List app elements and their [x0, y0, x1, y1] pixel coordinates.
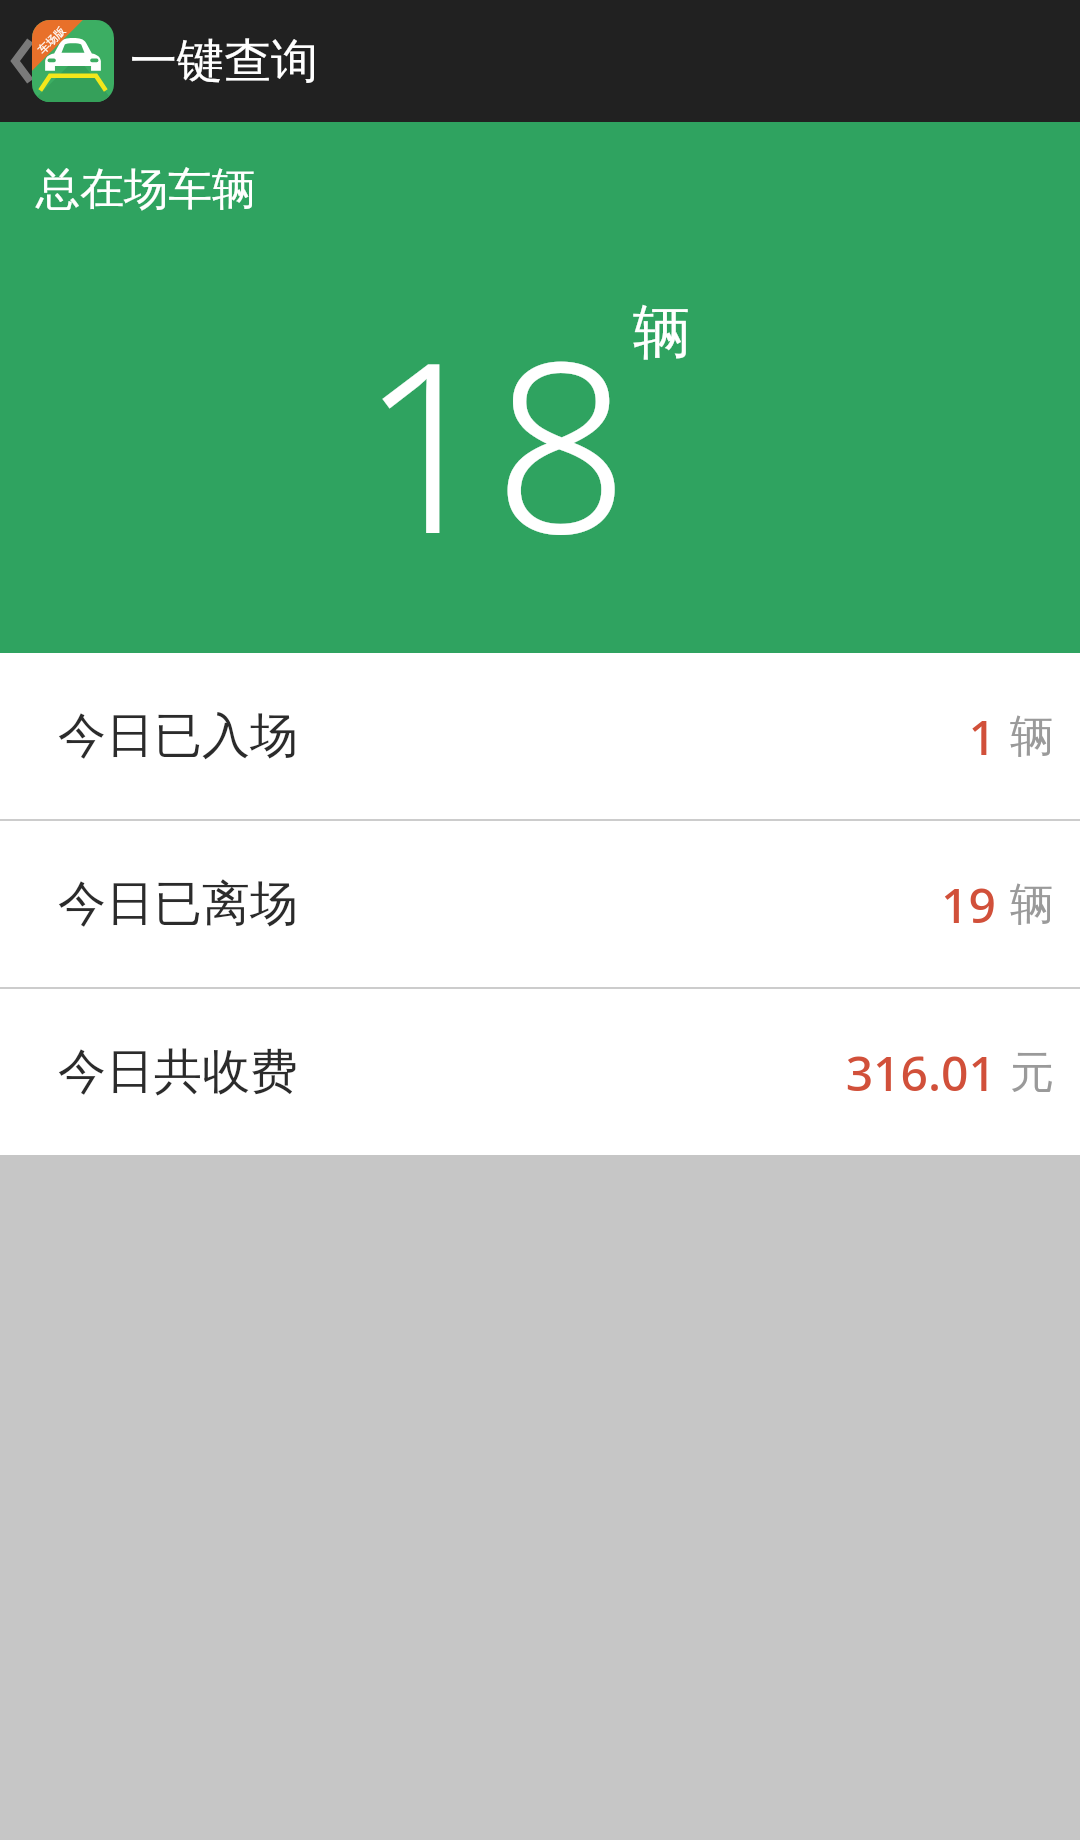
staticText: 车场版	[35, 23, 68, 57]
button[interactable]: Back	[0, 0, 46, 122]
staticText: 辆	[633, 296, 691, 369]
button[interactable]: 今日共收费	[0, 989, 1080, 1155]
staticText: 今日共收费	[58, 1042, 298, 1102]
staticText: 辆	[1010, 877, 1054, 932]
staticText: 今日已入场	[58, 706, 298, 766]
button[interactable]: 今日已离场	[0, 821, 1080, 987]
button[interactable]: 今日已入场	[0, 653, 1080, 819]
staticText: 一键查询	[130, 32, 318, 91]
staticText: 1	[968, 704, 996, 769]
staticText: 19	[941, 872, 996, 937]
staticText: 辆	[1010, 709, 1054, 764]
staticText: 元	[1010, 1045, 1054, 1100]
staticText: 316.01	[845, 1040, 996, 1105]
staticText: 今日已离场	[58, 874, 298, 934]
staticText: 18	[360, 282, 629, 602]
staticText: 总在场车辆	[36, 162, 256, 217]
